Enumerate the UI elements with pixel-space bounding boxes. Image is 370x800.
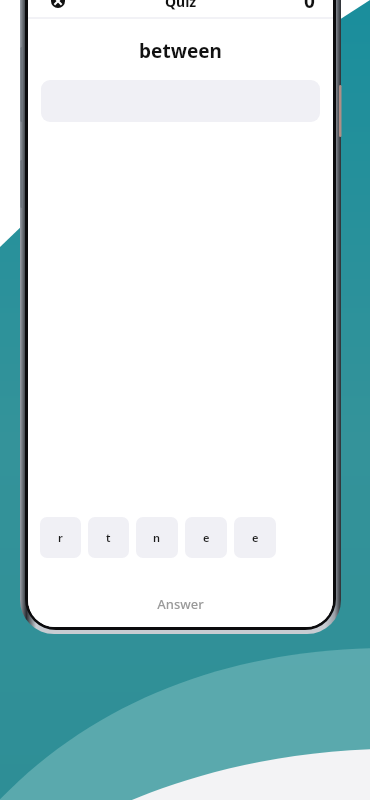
button[interactable]: e	[234, 517, 276, 558]
staticText: t	[106, 530, 111, 545]
button[interactable]: n	[136, 517, 178, 558]
button[interactable]: e	[185, 517, 227, 558]
button[interactable]: Close quiz	[44, 0, 72, 15]
staticText: Answer	[157, 595, 204, 613]
button[interactable]: r	[40, 517, 81, 558]
staticText: 0	[304, 0, 315, 14]
staticText: e	[203, 530, 210, 545]
staticText: n	[153, 530, 161, 545]
staticText: e	[252, 530, 259, 545]
staticText: between	[28, 38, 333, 64]
button[interactable]: Answer	[28, 595, 333, 613]
staticText: Quiz	[165, 0, 197, 11]
button[interactable]: t	[88, 517, 129, 558]
staticText: r	[58, 530, 63, 545]
